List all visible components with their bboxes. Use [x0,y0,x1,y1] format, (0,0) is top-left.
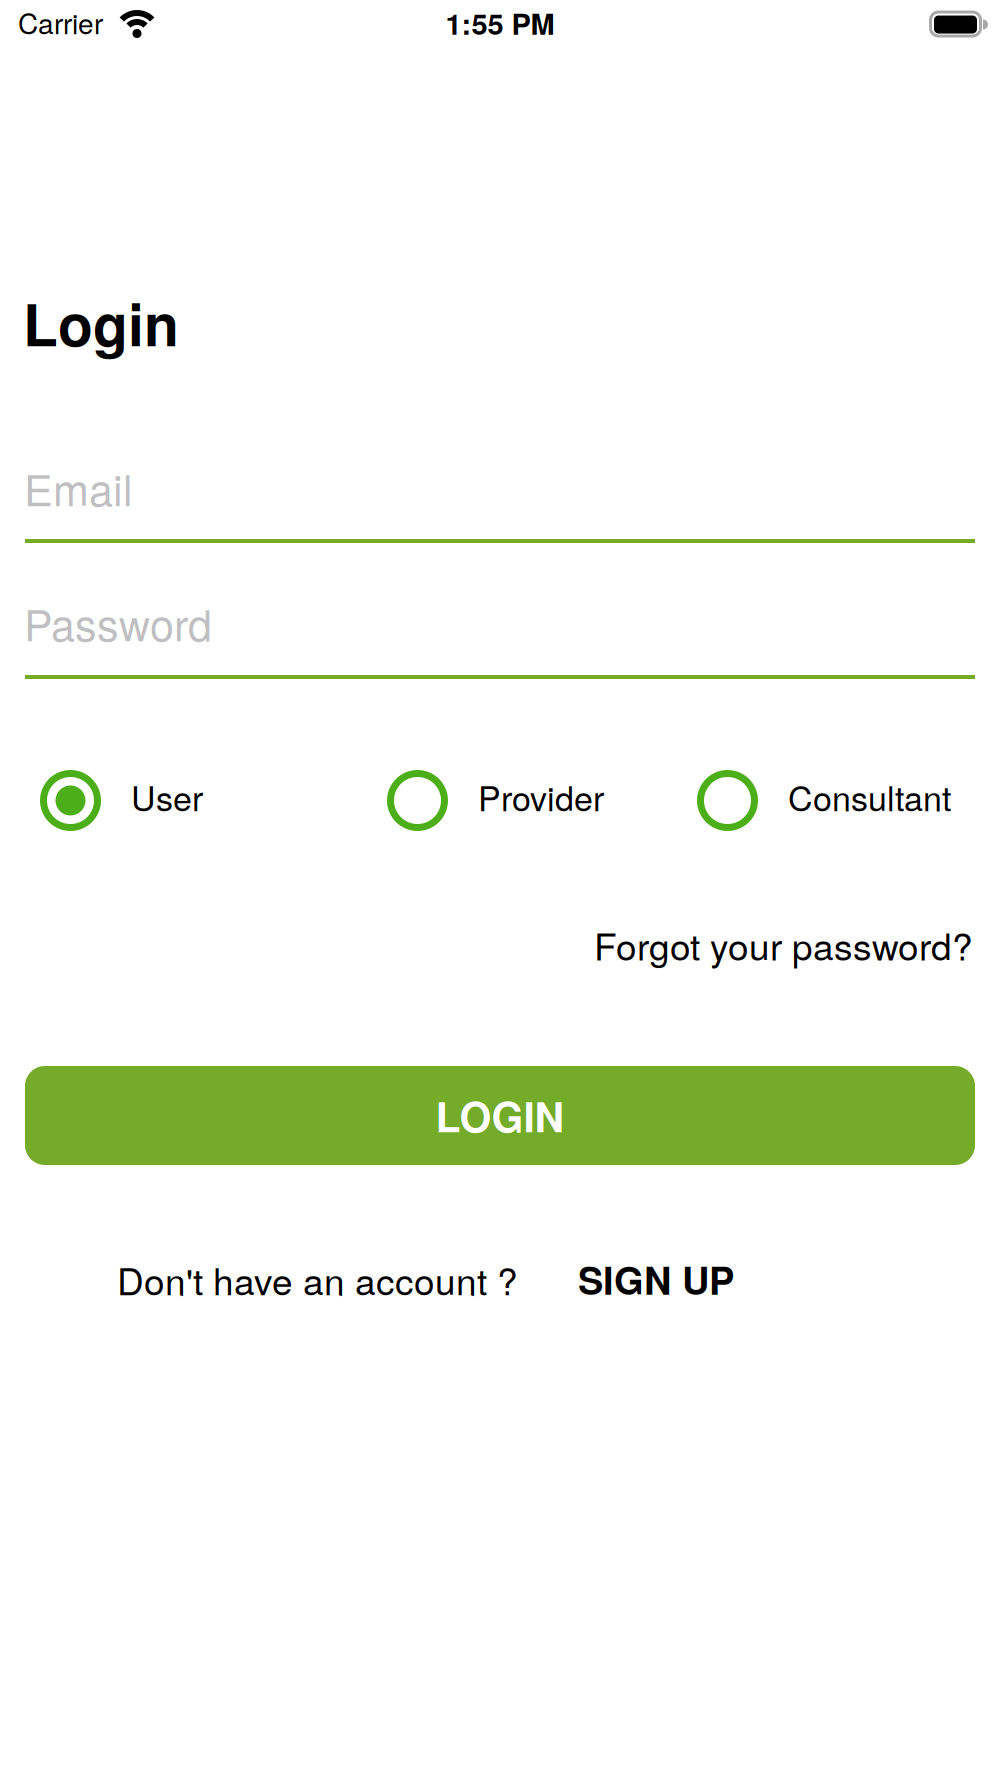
button[interactable]: Forgot your password? [594,918,973,971]
button[interactable]: LOGIN [25,1066,975,1165]
staticText: 1:55 PM [445,2,554,43]
button[interactable]: User [40,770,203,831]
staticText: Email [24,457,133,519]
staticText: SIGN UP [578,1252,734,1306]
staticText: Don't have an account ? [117,1253,518,1306]
staticText: Provider [478,772,604,821]
button[interactable]: SIGN UP [578,1252,734,1306]
staticText: User [131,772,203,821]
staticText: Consultant [788,772,951,821]
staticText: LOGIN [435,1086,564,1145]
button[interactable]: Consultant [697,770,951,831]
staticText: Forgot your password? [594,918,973,971]
staticText: Password [24,592,212,654]
button[interactable]: Provider [387,770,604,831]
staticText: Login [23,282,179,364]
staticText: Carrier [18,2,103,42]
